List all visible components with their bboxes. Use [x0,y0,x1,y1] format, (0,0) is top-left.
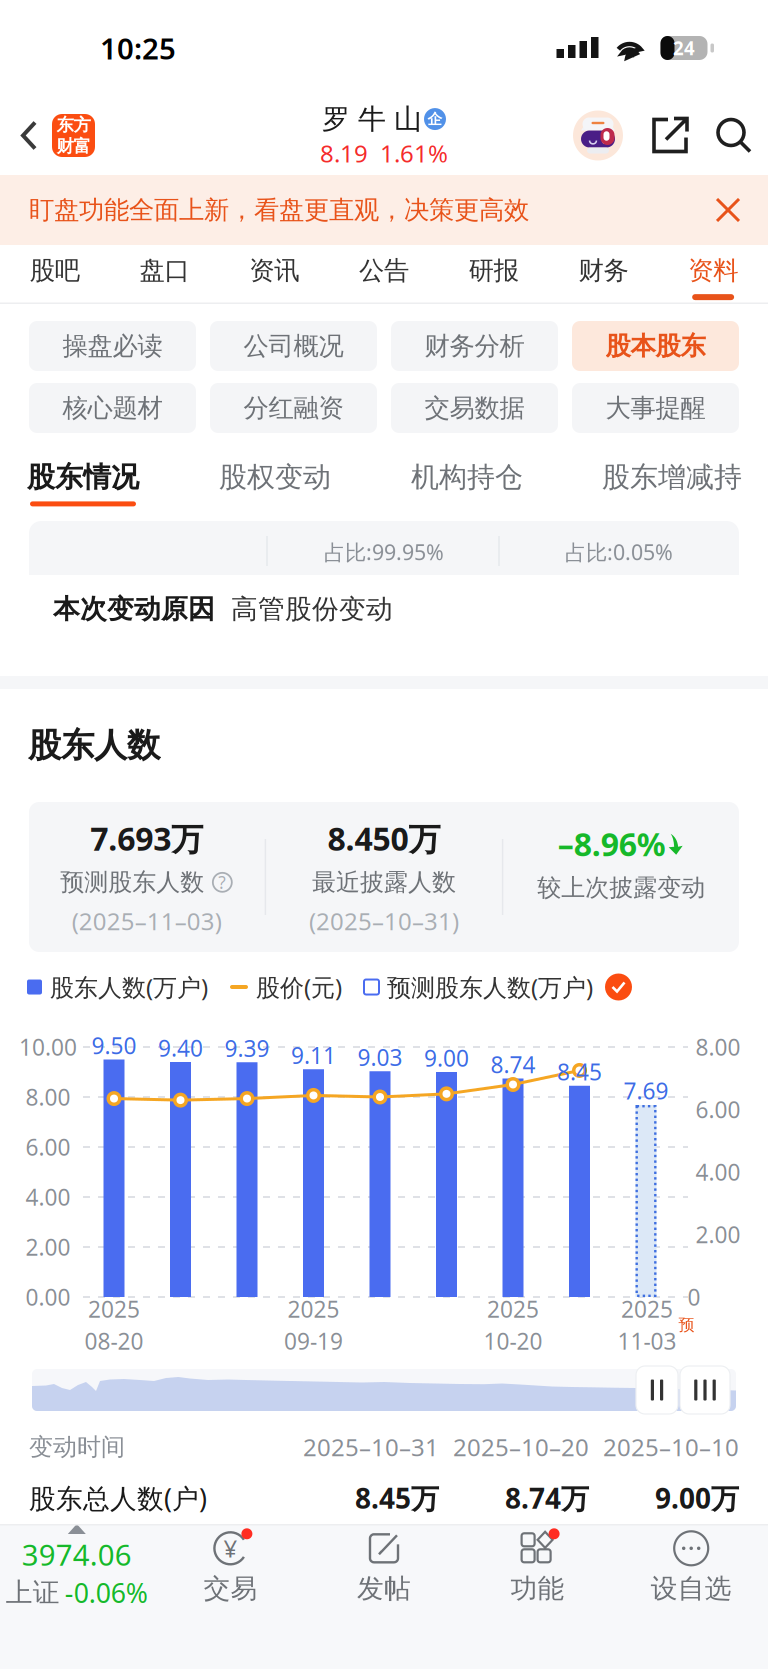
staticText: 资料 [688,255,738,286]
button[interactable]: Shanghai index [0,1524,154,1610]
staticText: 股东情况 [27,460,139,494]
staticText: 占比:99.95% [324,538,444,566]
staticText: 2025 [621,1294,673,1324]
staticText: 6.00 [695,1094,740,1124]
staticText: 8.19 1.61% [320,137,448,169]
staticText: 2025 [287,1294,339,1324]
staticText: 8.00 [695,1032,740,1062]
staticText: 6.00 [25,1132,70,1162]
staticText: 财务分析 [424,330,524,361]
staticText: 8.00 [25,1082,70,1112]
button[interactable]: AI assistant [573,110,623,160]
staticText: (2025–11–03) [72,905,222,937]
staticText: 变动时间 [29,1432,125,1462]
button[interactable]: 操盘必读 [29,321,196,371]
staticText: 8.45 [557,1057,602,1087]
staticText: 预 [678,1315,694,1335]
staticText: 2025–10–20 [453,1431,589,1463]
button[interactable]: 股东增减持 [577,447,767,521]
staticText: 预测股东人数 [60,868,204,897]
staticText: 股东人数 [28,725,160,766]
staticText: 预测股东人数(万户) [387,971,593,1003]
staticText: 本次变动原因 [53,593,215,625]
button[interactable]: 核心题材 [29,383,196,433]
staticText: 8.450万 [327,817,440,860]
staticText: 研报 [469,255,519,286]
staticText: (2025–10–31) [309,905,459,937]
staticText: 8.45万 [355,1479,439,1517]
staticText: 大事提醒 [605,392,705,423]
staticText: 10:25 [100,28,176,67]
staticText: 9.11 [291,1040,336,1070]
staticText: 盯盘功能全面上新，看盘更直观，决策更高效 [29,194,529,225]
button[interactable]: ¥ [154,1529,307,1605]
staticText: 上证 [6,1576,60,1609]
button[interactable]: 功能 [461,1529,614,1605]
button[interactable]: 股权变动 [180,447,370,521]
button[interactable]: East Money home [52,114,95,157]
staticText: 24 [673,36,695,60]
staticText: 股吧 [30,255,80,286]
staticText: 08-20 [84,1326,143,1356]
staticText: 功能 [511,1572,565,1605]
button[interactable]: 大事提醒 [572,383,739,433]
button[interactable]: 公告 [329,245,439,304]
button[interactable]: 股吧 [0,245,110,304]
button[interactable]: 交易数据 [391,383,558,433]
staticText: 资讯 [249,255,299,286]
staticText: 4.00 [695,1157,740,1187]
staticText: 股东总人数(户) [29,1480,207,1516]
staticText: 10.00 [19,1032,77,1062]
staticText: 最近披露人数 [312,868,456,897]
button[interactable]: Three column view [680,1366,730,1414]
staticText: 09-19 [284,1326,343,1356]
staticText: 2025 [487,1294,539,1324]
button[interactable]: 股东情况 [0,447,178,521]
staticText: 股东增减持 [602,460,742,494]
button[interactable]: Two column view [636,1366,678,1414]
staticText: 股东人数(万户) [50,971,208,1003]
staticText: 2025 [88,1294,140,1324]
button[interactable]: Close banner [704,186,752,234]
staticText: 东方 [56,114,90,135]
staticText: 2.00 [695,1219,740,1249]
button[interactable]: 资料 [658,245,768,304]
staticText: 8.74 [490,1049,535,1079]
staticText: 财富 [56,135,90,157]
staticText: 11-03 [617,1326,676,1356]
staticText: 8.74万 [505,1479,589,1517]
button[interactable]: 财务 [549,245,658,304]
button[interactable]: 资讯 [219,245,329,304]
button[interactable]: Search [706,109,762,161]
staticText: 0 [687,1282,700,1312]
staticText: 10-20 [483,1326,542,1356]
staticText: 盘口 [140,255,190,286]
staticText: 交易数据 [424,392,524,423]
staticText: 股价(元) [256,971,342,1003]
staticText: -0.06% [65,1575,148,1610]
button[interactable]: 设自选 [614,1529,768,1605]
button[interactable]: 分红融资 [210,383,377,433]
staticText: ? [218,871,226,894]
staticText: 设自选 [651,1572,732,1605]
staticText: 发帖 [357,1572,411,1605]
staticText: 分红融资 [243,392,343,423]
staticText: 4.00 [25,1182,70,1212]
staticText: 股权变动 [219,460,331,494]
button[interactable]: 发帖 [307,1529,461,1605]
staticText: 3974.06 [22,1535,132,1574]
button[interactable]: 机构持仓 [372,447,562,521]
staticText: 机构持仓 [411,460,523,494]
button[interactable]: Share [641,109,700,161]
staticText: 2.00 [25,1232,70,1262]
button[interactable]: Back [0,104,52,166]
staticText: 罗 牛 山 [322,102,422,136]
staticText: 2025–10–31 [303,1431,439,1463]
button[interactable]: 研报 [439,245,549,304]
button[interactable]: 股本股东 [572,321,739,371]
button[interactable]: 盘口 [110,245,219,304]
staticText: 7.69 [623,1076,668,1106]
button[interactable]: 财务分析 [391,321,558,371]
staticText: 财务 [578,255,628,286]
button[interactable]: 公司概况 [210,321,377,371]
